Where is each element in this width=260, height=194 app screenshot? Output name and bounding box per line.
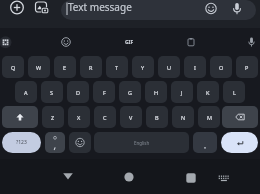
staticText: A	[24, 89, 28, 96]
button[interactable]: S	[41, 81, 63, 103]
staticText: H	[154, 89, 159, 96]
button[interactable]	[193, 132, 217, 153]
button[interactable]	[117, 165, 141, 189]
button[interactable]: E	[54, 56, 76, 78]
button[interactable]: I	[184, 56, 206, 78]
staticText: Text message	[68, 0, 132, 14]
button[interactable]	[69, 132, 91, 153]
button[interactable]	[221, 132, 258, 153]
button[interactable]: M	[198, 106, 220, 128]
button[interactable]	[222, 106, 258, 128]
button[interactable]: D	[67, 81, 89, 103]
button[interactable]	[8, 0, 26, 16]
button[interactable]: A	[15, 81, 37, 103]
button[interactable]: Z	[42, 106, 64, 128]
button[interactable]: B	[146, 106, 168, 128]
button[interactable]: R	[80, 56, 102, 78]
button[interactable]	[45, 132, 65, 153]
staticText: R	[89, 64, 93, 71]
button[interactable]: N	[172, 106, 194, 128]
button[interactable]: ?123	[2, 132, 41, 153]
staticText: T	[115, 64, 119, 71]
button[interactable]: W	[28, 56, 50, 78]
button[interactable]: O	[210, 56, 232, 78]
staticText: I	[194, 64, 196, 71]
staticText: Y	[141, 64, 145, 71]
button[interactable]: Text message	[61, 0, 256, 20]
staticText: GIF	[125, 39, 134, 46]
staticText: F	[103, 89, 106, 96]
staticText: K	[206, 89, 210, 96]
staticText: E	[63, 64, 67, 71]
staticText: G	[128, 89, 133, 96]
staticText: B	[155, 114, 159, 121]
button[interactable]: F	[93, 81, 115, 103]
button[interactable]	[212, 167, 236, 191]
button[interactable]	[56, 159, 80, 183]
staticText: D	[76, 89, 81, 96]
button[interactable]: C	[94, 106, 116, 128]
staticText: S	[50, 89, 54, 96]
staticText: English	[134, 140, 150, 146]
staticText: L	[233, 89, 236, 96]
staticText: M	[207, 114, 212, 121]
button[interactable]	[34, 0, 50, 16]
button[interactable]: U	[158, 56, 180, 78]
staticText: O	[219, 64, 224, 71]
button[interactable]: L	[223, 81, 245, 103]
staticText: J	[181, 89, 183, 96]
button[interactable]: G	[119, 81, 141, 103]
staticText: Q	[11, 64, 16, 71]
button[interactable]	[2, 106, 38, 128]
button[interactable]: GIF	[122, 37, 136, 47]
staticText: U	[167, 64, 172, 71]
button[interactable]	[179, 166, 203, 190]
staticText: Z	[51, 114, 55, 121]
button[interactable]: X	[68, 106, 90, 128]
staticText: V	[129, 114, 133, 121]
staticText: P	[245, 64, 249, 71]
button[interactable]: J	[171, 81, 193, 103]
button[interactable]: P	[236, 56, 258, 78]
button[interactable]: Y	[132, 56, 154, 78]
staticText: ?123	[16, 139, 27, 146]
button[interactable]: K	[197, 81, 219, 103]
staticText: X	[77, 114, 81, 121]
button[interactable]: English	[94, 132, 189, 153]
button[interactable]: T	[106, 56, 128, 78]
staticText: C	[103, 114, 107, 121]
staticText: W	[36, 64, 42, 71]
staticText: N	[181, 114, 186, 121]
button[interactable]: H	[145, 81, 167, 103]
button[interactable]: Q	[2, 56, 24, 78]
button[interactable]: V	[120, 106, 142, 128]
